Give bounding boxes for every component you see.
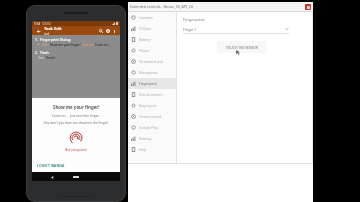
button[interactable]: Location: [128, 12, 176, 23]
staticText: Finger 1: [183, 27, 197, 32]
staticText: Not recognized: [65, 148, 87, 152]
staticText: Location: [139, 15, 153, 20]
button[interactable]: More options: [111, 28, 117, 34]
button[interactable]: Screen record: [128, 111, 176, 122]
staticText: 1:14: [34, 22, 40, 26]
button[interactable]: Google Play: [128, 122, 176, 133]
staticText: Fingerprint: [183, 17, 205, 22]
staticText: Fingerprint Dialog: [40, 37, 71, 42]
button[interactable]: Virtual sensors: [128, 89, 176, 100]
button[interactable]: Phone: [128, 45, 176, 56]
button[interactable]: Back: [35, 28, 41, 34]
staticText: Battery: [139, 37, 151, 42]
button[interactable]: Back: [48, 173, 56, 181]
staticText: 1.: [35, 37, 38, 42]
staticText: •: [38, 43, 40, 47]
button[interactable]: Text:: [38, 56, 120, 60]
staticText: Hey don't you dare not show me the finge…: [38, 121, 114, 125]
staticText: Screen record: [139, 114, 161, 119]
button[interactable]: Finger 1: [183, 25, 289, 33]
staticText: Title:: [42, 43, 49, 47]
button[interactable]: 2.: [35, 50, 120, 55]
button[interactable]: Help: [128, 144, 176, 155]
staticText: Virtual sensors: [139, 92, 163, 97]
button[interactable]: Cellular: [128, 23, 176, 34]
staticText: Bug report: [139, 103, 157, 108]
staticText: Extended controls - Nexus_5X_API_24: [130, 4, 193, 9]
button[interactable]: Fingerprint: [128, 78, 176, 89]
button[interactable]: Bug report: [128, 100, 176, 111]
staticText: Task Edit: [44, 26, 62, 32]
button[interactable]: Battery: [128, 34, 176, 45]
button[interactable]: Search: [97, 27, 104, 34]
staticText: I DON'T WANNA: [37, 163, 65, 168]
staticText: task: [44, 32, 50, 35]
staticText: Come on...: [95, 43, 111, 47]
staticText: Show me your finger!: [50, 43, 81, 47]
staticText: Show me your finger!: [53, 104, 100, 110]
button[interactable]: Directional pad: [128, 56, 176, 67]
staticText: TOUCH THE SENSOR: [226, 45, 258, 49]
staticText: Directional pad: [139, 59, 164, 64]
staticText: Microphone: [139, 70, 159, 75]
staticText: Come on ... Just one little finger...: [52, 114, 101, 118]
button[interactable]: Home: [71, 172, 81, 181]
staticText: 2.: [35, 50, 38, 55]
staticText: Text:: [38, 56, 45, 60]
button[interactable]: Settings: [128, 133, 176, 144]
button[interactable]: TOUCH THE SENSOR: [217, 41, 267, 53]
staticText: Help: [139, 147, 147, 152]
button[interactable]: •: [38, 43, 120, 47]
button[interactable]: Close window: [305, 4, 311, 10]
staticText: Fingerprint: [139, 81, 157, 86]
button[interactable]: Settings: [104, 27, 111, 34]
staticText: Cellular: [139, 26, 152, 31]
button[interactable]: 1.: [35, 37, 120, 42]
button[interactable]: Microphone: [128, 67, 176, 78]
button[interactable]: I DON'T WANNA: [36, 162, 66, 169]
staticText: Flash: [40, 50, 49, 55]
staticText: Content:: [82, 43, 94, 47]
staticText: Phone: [139, 48, 150, 53]
staticText: Settings: [139, 136, 152, 141]
staticText: Yeeeh!: [46, 56, 56, 60]
staticText: Google Play: [139, 125, 158, 130]
